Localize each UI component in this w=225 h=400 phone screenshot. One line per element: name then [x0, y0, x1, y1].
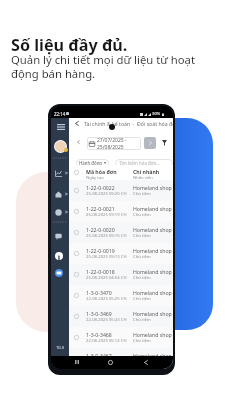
staticText: Số liệu đầy đủ.	[11, 34, 128, 56]
staticText: Chủ tiệm	[133, 317, 151, 323]
button[interactable]: 1-3-0-3467	[69, 348, 173, 369]
staticText: 25-08-2025 09:13 CH	[86, 254, 127, 260]
button[interactable]: fb	[51, 248, 69, 263]
staticText: 30%	[152, 111, 161, 117]
button[interactable]: chat	[51, 229, 69, 244]
button[interactable]: Home	[104, 356, 116, 368]
button[interactable]: 1-3-0-3469	[69, 306, 173, 327]
button[interactable]: Back	[140, 356, 152, 368]
button[interactable]: Menu	[56, 122, 65, 131]
staticText: Hành động	[79, 160, 103, 166]
staticText: Homeland shop	[133, 184, 172, 191]
staticText: Homeland shop	[133, 268, 172, 275]
staticText: >	[65, 209, 68, 216]
staticText: Homeland shop	[133, 226, 172, 233]
button[interactable]: chart	[51, 166, 69, 181]
staticText: 1-3-0-3470	[86, 289, 112, 296]
button[interactable]: Back	[73, 119, 81, 127]
staticText: 1-3-0-3467	[86, 352, 112, 359]
staticText: 22-08-2025 05:23 CH	[86, 317, 127, 323]
staticText: Chủ tiệm	[133, 359, 151, 365]
staticText: Tìm kiếm hóa đơn...	[119, 160, 160, 166]
staticText: 25/08/2025	[97, 144, 124, 150]
staticText: Chủ tiệm	[133, 338, 151, 344]
button[interactable]: Recents	[71, 356, 83, 368]
button[interactable]: Tìm kiếm hóa đơn...	[115, 159, 173, 167]
button[interactable]: 1-22-0-0018	[69, 264, 173, 285]
button[interactable]: 1-22-0-0019	[69, 243, 173, 264]
staticText: Homeland shop	[133, 310, 172, 317]
button[interactable]: 1-22-0-0022	[69, 180, 173, 201]
staticText: 25-08-2025 04:54 CH	[86, 275, 127, 281]
staticText: >	[65, 191, 68, 198]
staticText: >	[65, 170, 68, 177]
button[interactable]: 1-22-0-0021	[69, 201, 173, 222]
staticText: Nhân viên	[133, 175, 153, 181]
staticText: Homeland shop	[133, 247, 172, 254]
staticText: 27/07/2025 -	[97, 137, 127, 144]
staticText: 22-08-2025 05:25 CH	[86, 296, 127, 302]
staticText: 1-22-0-0021	[86, 205, 115, 212]
staticText: Homeland shop	[133, 289, 172, 296]
button[interactable]: home	[51, 187, 69, 202]
button[interactable]: 1-3-0-3470	[69, 285, 173, 306]
staticText: 25-08-2025 09:20 CH	[86, 191, 127, 197]
staticText: 10.0	[56, 345, 64, 350]
staticText: Homeland shop	[133, 352, 172, 359]
staticText: Homeland shop	[133, 331, 172, 338]
staticText: Mã hóa đơn	[86, 168, 117, 175]
staticText: Tài chính & kế toán · Đối soát hóa đơn	[84, 120, 173, 127]
button[interactable]: Mã hóa đơn	[69, 165, 173, 180]
staticText: 22-08-2025 05:02 CH	[86, 359, 127, 365]
staticText: Quản lý chi tiết mọi dữ liệu từ hoạt độn…	[11, 52, 211, 81]
staticText: Ngày tạo	[86, 175, 104, 181]
staticText: Chủ tiệm	[133, 296, 151, 302]
button[interactable]: Profile	[54, 140, 67, 153]
staticText: 1-3-0-3469	[86, 310, 112, 317]
staticText: 1-22-0-0020	[86, 226, 115, 233]
staticText: Chủ tiệm	[133, 254, 151, 260]
staticText: Chủ tiệm	[133, 191, 151, 197]
staticText: 22:14	[54, 111, 66, 117]
staticText: 1-3-0-3468	[86, 331, 112, 338]
staticText: 25-08-2025 09:19 CH	[86, 212, 127, 218]
staticText: Chủ tiệm	[133, 212, 151, 218]
button[interactable]: Hành động	[76, 159, 109, 167]
button[interactable]: Next period	[144, 137, 156, 149]
staticText: Chủ tiệm	[133, 233, 151, 239]
staticText: 1-22-0-0019	[86, 247, 115, 254]
button[interactable]: Filter	[159, 137, 170, 148]
staticText: Chi nhánh	[133, 168, 160, 175]
staticText: 1-22-0-0022	[86, 184, 115, 191]
button[interactable]: msg	[51, 265, 69, 280]
staticText: 25-08-2025 09:16 CH	[86, 233, 127, 239]
staticText: Homeland shop	[133, 205, 172, 212]
button[interactable]: 27/07/2025 -	[87, 137, 141, 150]
staticText: 22-08-2025 05:12 CH	[86, 338, 127, 344]
staticText: Chủ tiệm	[133, 275, 151, 281]
button[interactable]: 1-22-0-0020	[69, 222, 173, 243]
staticText: 1-22-0-0018	[86, 268, 115, 275]
button[interactable]: coin	[51, 205, 69, 220]
button[interactable]: Previous period	[74, 137, 82, 147]
button[interactable]: 1-3-0-3468	[69, 327, 173, 348]
